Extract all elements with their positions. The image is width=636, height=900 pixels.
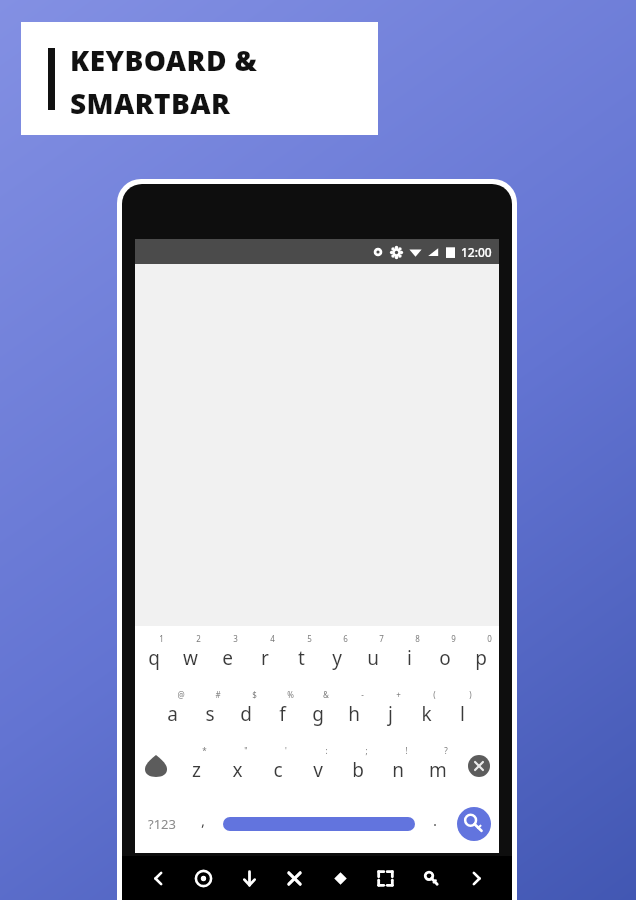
button[interactable]: ?123 (135, 794, 189, 853)
button[interactable]: 0 (463, 626, 499, 682)
button[interactable]: Previous (140, 860, 176, 896)
staticText: $ (252, 689, 257, 700)
staticText: b (352, 757, 364, 783)
button[interactable]: " (217, 738, 258, 794)
button[interactable]: Fullscreen (367, 860, 403, 896)
staticText: ' (285, 745, 287, 756)
staticText: 5 (307, 633, 312, 644)
staticText: n (392, 757, 404, 783)
staticText: * (202, 745, 207, 756)
button[interactable]: 6 (319, 626, 355, 682)
button[interactable]: 1 (135, 626, 172, 682)
button[interactable]: Space (217, 794, 421, 853)
button[interactable]: ( (408, 682, 444, 738)
staticText: d (240, 701, 252, 727)
button[interactable]: 9 (427, 626, 463, 682)
staticText: KEYBOARD & (70, 41, 258, 79)
button[interactable]: 7 (355, 626, 391, 682)
staticText: 0 (487, 633, 492, 644)
button[interactable]: , (189, 794, 217, 853)
button[interactable]: & (300, 682, 336, 738)
staticText: j (388, 701, 393, 727)
staticText: p (475, 645, 487, 671)
staticText: 4 (270, 633, 275, 644)
button[interactable]: # (191, 682, 228, 738)
staticText: a (167, 701, 178, 727)
button[interactable]: 2 (172, 626, 209, 682)
staticText: 6 (343, 633, 348, 644)
button[interactable]: Key (413, 860, 449, 896)
staticText: g (312, 701, 324, 727)
staticText: 9 (451, 633, 456, 644)
button[interactable]: ; (338, 738, 378, 794)
staticText: q (148, 645, 160, 671)
staticText: ?123 (148, 815, 176, 833)
staticText: l (460, 701, 465, 727)
button[interactable]: * (176, 738, 217, 794)
button[interactable]: Next (458, 860, 494, 896)
staticText: 3 (233, 633, 238, 644)
button[interactable]: Shift (135, 738, 176, 794)
button[interactable]: @ (154, 682, 191, 738)
button[interactable]: + (372, 682, 408, 738)
staticText: 2 (196, 633, 201, 644)
button[interactable]: ! (378, 738, 418, 794)
button[interactable]: ? (418, 738, 458, 794)
staticText: ; (365, 745, 368, 756)
staticText: 1 (159, 633, 164, 644)
button[interactable]: Download (231, 860, 267, 896)
staticText: 12:00 (461, 244, 492, 260)
staticText: ( (433, 689, 436, 700)
staticText: + (396, 689, 401, 700)
staticText: t (298, 645, 305, 671)
staticText: o (439, 645, 451, 671)
staticText: @ (177, 689, 185, 700)
staticText: SMARTBAR (70, 84, 231, 122)
staticText: ) (469, 689, 472, 700)
staticText: . (433, 810, 438, 830)
button[interactable]: % (264, 682, 300, 738)
staticText: " (244, 745, 248, 756)
button[interactable]: Close (276, 860, 312, 896)
staticText: y (332, 645, 342, 671)
staticText: s (205, 701, 215, 727)
staticText: & (323, 689, 329, 700)
button[interactable]: Theme (322, 860, 358, 896)
staticText: e (222, 645, 233, 671)
staticText: m (429, 757, 447, 783)
staticText: 7 (379, 633, 384, 644)
button[interactable]: ) (444, 682, 480, 738)
staticText: r (261, 645, 269, 671)
staticText: ! (405, 745, 408, 756)
staticText: i (407, 645, 412, 671)
staticText: # (215, 689, 221, 700)
button[interactable]: $ (228, 682, 264, 738)
staticText: : (325, 745, 328, 756)
staticText: , (201, 810, 206, 830)
button[interactable]: 5 (283, 626, 319, 682)
staticText: v (313, 757, 323, 783)
button[interactable]: - (336, 682, 372, 738)
button[interactable]: 4 (246, 626, 283, 682)
staticText: z (192, 757, 201, 783)
staticText: c (273, 757, 283, 783)
staticText: u (367, 645, 379, 671)
button[interactable]: : (298, 738, 338, 794)
button[interactable]: 8 (391, 626, 427, 682)
staticText: h (348, 701, 360, 727)
button[interactable]: ' (258, 738, 298, 794)
button[interactable]: Search (449, 794, 499, 853)
staticText: % (287, 689, 294, 700)
button[interactable]: Record (185, 860, 221, 896)
staticText: ? (444, 745, 448, 756)
staticText: x (232, 757, 243, 783)
staticText: k (421, 701, 432, 727)
button[interactable]: Backspace (458, 738, 499, 794)
staticText: 8 (415, 633, 420, 644)
staticText: w (183, 645, 198, 671)
button[interactable]: . (421, 794, 449, 853)
button[interactable]: 3 (209, 626, 246, 682)
staticText: f (279, 701, 286, 727)
staticText: - (361, 689, 364, 700)
